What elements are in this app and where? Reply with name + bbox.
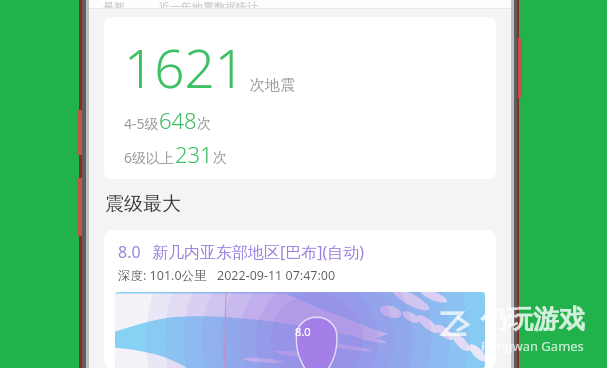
staticText: 8.0 — [295, 324, 311, 339]
staticText: Rengwan Games — [481, 337, 584, 355]
staticText: 231 — [175, 139, 213, 169]
staticText: 4-5级 — [124, 114, 159, 133]
staticText: 最新 — [103, 0, 125, 8]
staticText: 新几内亚东部地区[巴布](自动) — [152, 241, 365, 263]
staticText: 震级最大 — [105, 192, 181, 216]
button[interactable]: 1621 — [104, 17, 496, 179]
staticText: 6级以上 — [124, 148, 175, 167]
staticText: 1621 — [124, 31, 246, 103]
staticText: 仍玩游戏 — [481, 303, 585, 336]
staticText: 近一年地震数据统计 — [159, 0, 258, 8]
staticText: 648 — [159, 105, 197, 135]
staticText: 次地震 — [250, 76, 295, 95]
staticText: 8.0 — [118, 241, 141, 263]
staticText: 次 — [213, 149, 227, 167]
button[interactable]: 8.0 — [104, 230, 496, 368]
staticText: 深度: 101.0公里 — [118, 267, 207, 284]
staticText: 次 — [197, 115, 211, 133]
staticText: 2022-09-11 07:47:00 — [217, 267, 336, 284]
